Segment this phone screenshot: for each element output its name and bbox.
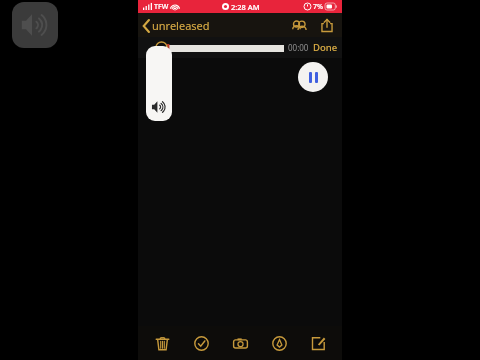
button[interactable]: Collaborate (289, 15, 309, 35)
button[interactable]: unreleased (143, 18, 214, 33)
staticText: unreleased (152, 18, 210, 33)
button[interactable]: Camera (225, 328, 255, 358)
button[interactable]: Volume (146, 46, 172, 121)
staticText: Done (313, 41, 338, 54)
button[interactable]: Share (317, 15, 337, 35)
staticText: 00:00 (288, 42, 309, 53)
button[interactable]: Highlight (264, 328, 294, 358)
button[interactable]: Delete (147, 328, 177, 358)
button[interactable]: Compose (303, 328, 333, 358)
button[interactable]: Mark complete (186, 328, 216, 358)
staticText: 7% (313, 2, 323, 12)
button[interactable]: Done (313, 41, 338, 54)
button[interactable]: Pause (298, 62, 328, 92)
button[interactable] (166, 41, 284, 55)
staticText: 2:28 AM (231, 2, 260, 12)
button[interactable]: Audio (12, 2, 58, 48)
staticText: TFW (154, 2, 169, 12)
